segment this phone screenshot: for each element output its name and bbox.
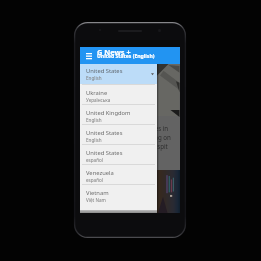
staticText: G News +	[97, 47, 131, 57]
button[interactable]: Venezuela	[80, 164, 157, 184]
button[interactable]: Ukraine	[80, 84, 157, 104]
staticText: español	[86, 157, 103, 163]
button[interactable]: Vietnam	[80, 184, 157, 204]
staticText: español	[86, 177, 103, 183]
staticText: United States (English)	[97, 53, 155, 60]
staticText: Ukraine	[86, 89, 108, 97]
button[interactable]: Open navigation drawer	[80, 47, 97, 64]
staticText: United Kingdom	[86, 109, 131, 117]
button[interactable]: United Kingdom	[80, 104, 157, 124]
staticText: new hospit	[136, 142, 168, 150]
staticText: Việt Nam	[86, 197, 106, 203]
staticText: United States	[86, 149, 123, 157]
staticText: English	[86, 117, 102, 123]
staticText: Українська	[86, 97, 111, 103]
button[interactable]: United States	[80, 144, 157, 164]
staticText: English	[86, 75, 102, 81]
staticText: United States	[86, 129, 123, 137]
staticText: Venezuela	[86, 169, 114, 177]
button[interactable]: United States	[80, 124, 157, 144]
staticText: United States	[86, 67, 123, 75]
staticText: Toll rises in shooting on	[136, 124, 180, 142]
staticText: English	[86, 137, 102, 143]
staticText: Vietnam	[86, 189, 109, 197]
button[interactable]: United States	[80, 64, 157, 84]
